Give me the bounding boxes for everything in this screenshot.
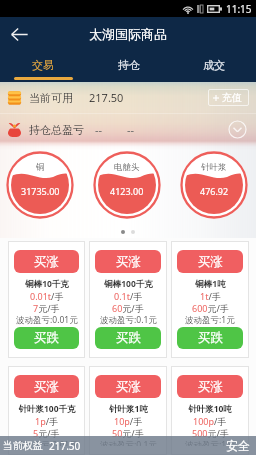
staticText: 波动盈亏:0.01元 [16,439,78,446]
staticText: 铜棒10千克 [25,278,69,290]
staticText: 交易 [32,58,54,72]
staticText: 波动盈亏:0.1元 [100,314,157,326]
button[interactable]: 买涨 [177,250,243,273]
button[interactable]: 充值 [208,89,249,106]
staticText: 铜 [36,162,45,173]
staticText: 买涨 [34,254,59,270]
staticText: 针叶浆 [201,162,227,173]
staticText: 217.50 [49,439,81,453]
button[interactable]: 买涨 [14,375,79,398]
button[interactable]: 买涨 [177,375,243,398]
button[interactable]: 买跌 [14,327,79,349]
staticText: 5元/手 [33,427,60,439]
staticText: 1p/手 [35,415,59,427]
staticText: 买跌 [116,330,141,346]
button[interactable]: 买涨 [8,241,85,358]
button[interactable]: 电艙头 [93,151,161,219]
staticText: 波动盈亏:0.1元 [100,439,157,446]
button[interactable]: Expand [228,120,247,139]
staticText: 当前可用 [29,91,73,105]
staticText: 太湖国际商品 [89,26,167,42]
staticText: 500元/手 [192,427,229,439]
button[interactable]: 买涨 [171,241,249,358]
button[interactable]: 买涨 [89,241,167,358]
staticText: 当前权益 [3,439,43,452]
staticText: 217.50 [89,90,124,105]
staticText: 11:15 [226,2,252,16]
button[interactable]: 买涨 [14,250,79,273]
staticText: 31735.00 [21,185,60,197]
button[interactable]: 买跌 [95,327,161,349]
staticText: -- [95,122,103,137]
staticText: 买涨 [34,379,59,395]
staticText: 安全 [226,438,250,453]
button[interactable]: 安全 [226,438,253,453]
staticText: 铜棒1吨 [195,278,226,290]
button[interactable]: 买涨 [8,366,85,455]
staticText: 60元/手 [112,302,144,314]
staticText: 买涨 [116,254,141,270]
staticText: 持仓总盈亏 [29,123,84,137]
staticText: 100p/手 [193,415,227,427]
staticText: 买涨 [198,379,223,395]
button[interactable]: 买涨 [171,366,249,455]
staticText: 波动盈亏:1元 [185,439,235,446]
staticText: 针叶浆10吨 [188,403,232,415]
staticText: 针叶浆100千克 [18,403,76,415]
button[interactable]: 铜 [6,151,74,219]
staticText: 7元/手 [33,302,60,314]
button[interactable]: 买涨 [89,366,167,455]
button[interactable]: 成交 [171,51,256,82]
button[interactable]: 针叶浆 [180,151,248,219]
staticText: 电艙头 [114,162,140,173]
staticText: 持仓 [118,58,140,72]
button[interactable]: 买跌 [177,327,243,349]
button[interactable]: Back [5,20,33,48]
staticText: -- [127,122,135,137]
staticText: 10p/手 [114,415,143,427]
staticText: 4123.00 [110,185,144,197]
staticText: 0.1t/手 [114,290,143,302]
staticText: 针叶浆1吨 [109,403,148,415]
button[interactable]: 交易 [0,51,86,82]
staticText: 买跌 [34,330,59,346]
staticText: 476.92 [200,185,229,197]
staticText: 买跌 [198,330,223,346]
staticText: 0.01t/手 [30,290,64,302]
staticText: 波动盈亏:1元 [185,314,235,326]
staticText: 600元/手 [192,302,229,314]
staticText: 波动盈亏:0.01元 [16,314,78,326]
staticText: 买涨 [116,379,141,395]
staticText: 1t/手 [200,290,221,302]
staticText: 充值 [222,91,242,104]
button[interactable]: 买涨 [95,250,161,273]
button[interactable]: 买涨 [95,375,161,398]
staticText: 买涨 [198,254,223,270]
staticText: 50元/手 [112,427,144,439]
button[interactable]: 持仓 [86,51,171,82]
staticText: 成交 [203,58,225,72]
staticText: 铜棒100千克 [104,278,153,290]
